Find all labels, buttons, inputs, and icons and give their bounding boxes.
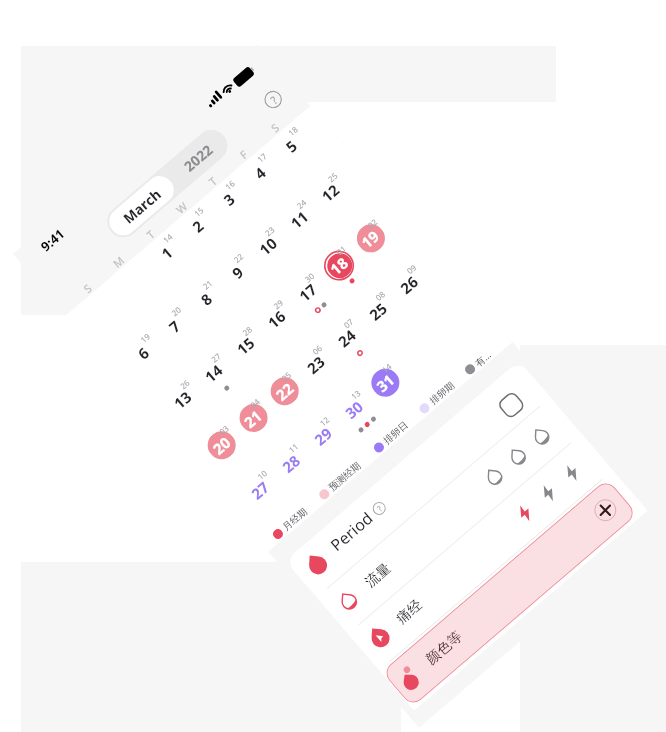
staticText: ? — [267, 92, 281, 107]
staticText: 月经期 — [280, 505, 310, 533]
button[interactable]: Help — [260, 87, 286, 112]
staticText: S — [268, 119, 283, 135]
staticText: 21 — [239, 405, 266, 432]
staticText: 28 — [240, 323, 255, 338]
staticText: 23 — [262, 223, 277, 238]
staticText: 22 — [271, 378, 298, 405]
staticText: F — [236, 147, 251, 162]
staticText: 颜色等 — [423, 628, 466, 669]
staticText: 7 — [164, 316, 184, 337]
staticText: 20 — [208, 432, 235, 459]
staticText: 27 — [209, 350, 223, 365]
staticText: 2022 — [180, 140, 217, 176]
staticText: 10 — [255, 232, 282, 259]
staticText: 14 — [160, 230, 175, 245]
staticText: 14 — [200, 359, 227, 386]
button[interactable]: 流量 — [316, 397, 581, 634]
staticText: 15 — [191, 204, 206, 219]
staticText: T — [143, 226, 158, 242]
staticText: 4 — [250, 162, 270, 183]
staticText: 30 — [341, 396, 368, 423]
staticText: 8 — [196, 288, 216, 309]
staticText: 10 — [255, 467, 270, 482]
staticText: 21 — [200, 277, 215, 292]
staticText: W — [173, 198, 191, 217]
staticText: 06 — [310, 342, 325, 357]
staticText: 08 — [373, 288, 388, 303]
staticText: 29 — [310, 423, 336, 449]
staticText: 09 — [404, 261, 419, 276]
staticText: 13 — [169, 386, 196, 413]
staticText: S — [80, 280, 95, 296]
staticText: ? — [374, 503, 385, 514]
button[interactable]: Close — [590, 495, 621, 526]
staticText: M — [110, 253, 127, 271]
staticText: 排卵日 — [381, 419, 411, 447]
staticText: 14 — [379, 360, 394, 375]
staticText: 16 — [223, 177, 237, 192]
staticText: 04 — [248, 395, 262, 410]
staticText: 1 — [157, 242, 176, 263]
staticText: 24 — [294, 196, 309, 211]
staticText: 26 — [177, 376, 192, 391]
staticText: March — [119, 185, 165, 228]
staticText: 15 — [232, 332, 259, 359]
button[interactable]: 痛经 — [348, 433, 613, 670]
staticText: Period — [326, 507, 377, 556]
staticText: 17 — [255, 150, 269, 165]
staticText: 07 — [341, 315, 356, 330]
staticText: 11 — [286, 440, 301, 455]
staticText: 2 — [188, 215, 208, 236]
staticText: 05 — [279, 369, 294, 384]
staticText: 20 — [169, 303, 184, 318]
button[interactable]: March — [101, 123, 234, 244]
staticText: 12 — [317, 413, 332, 428]
staticText: 25 — [325, 169, 340, 184]
staticText: 30 — [302, 270, 317, 285]
staticText: 12 — [317, 179, 344, 206]
staticText: 5 — [281, 135, 301, 156]
staticText: 26 — [396, 271, 423, 298]
staticText: 痛经 — [393, 596, 426, 628]
staticText: 23 — [302, 351, 329, 378]
staticText: 19 — [138, 330, 153, 345]
staticText: 18 — [286, 123, 300, 138]
staticText: T — [205, 173, 220, 189]
staticText: 01 — [334, 242, 349, 257]
staticText: 预测经期 — [326, 460, 363, 494]
staticText: 22 — [231, 250, 246, 265]
staticText: 排卵期 — [427, 379, 457, 407]
staticText: 31 — [372, 369, 399, 396]
staticText: 27 — [247, 477, 273, 503]
staticText: 颜色等 — [426, 625, 469, 666]
staticText: 有… — [472, 348, 494, 369]
staticText: 17 — [295, 279, 321, 306]
staticText: 13 — [348, 387, 363, 402]
staticText: 18 — [326, 252, 352, 279]
staticText: 16 — [263, 305, 290, 332]
staticText: 28 — [278, 450, 305, 477]
staticText: 3 — [219, 189, 239, 210]
staticText: 11 — [286, 206, 313, 233]
staticText: 9 — [227, 262, 247, 283]
staticText: 24 — [334, 324, 360, 351]
staticText: 9:41 — [37, 225, 67, 254]
staticText: 流量 — [362, 560, 395, 592]
button[interactable]: Add record — [496, 390, 527, 421]
staticText: 25 — [365, 298, 391, 325]
staticText: 03 — [217, 422, 231, 437]
staticText: 29 — [271, 296, 286, 311]
staticText: 02 — [365, 216, 380, 231]
staticText: 19 — [357, 225, 383, 252]
staticText: 6 — [133, 342, 153, 363]
button[interactable]: 颜色等 — [382, 478, 638, 707]
